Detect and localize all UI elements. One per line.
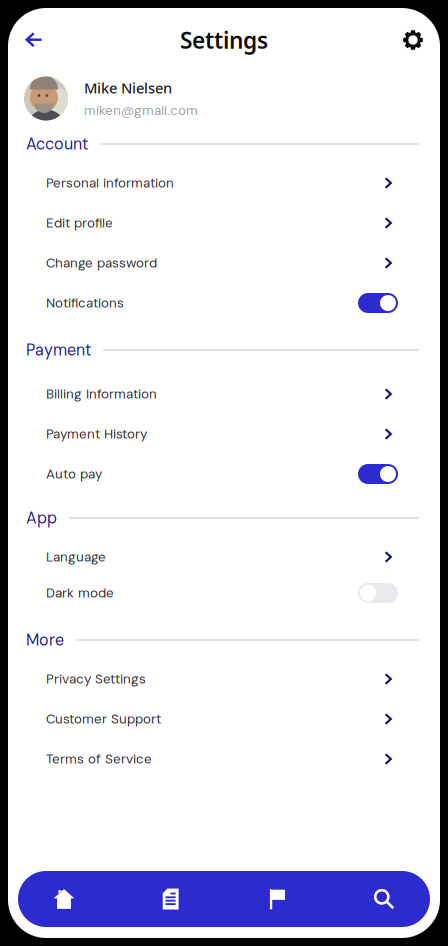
button[interactable]: Personal information (8, 163, 440, 203)
button[interactable]: Dark mode (8, 573, 440, 613)
staticText: Payment (26, 340, 91, 360)
button[interactable]: Documents (143, 871, 199, 927)
button[interactable]: Privacy Settings (8, 659, 440, 699)
button[interactable]: Mike Nielsen (8, 72, 440, 125)
button[interactable]: Reports (249, 871, 305, 927)
staticText: Customer Support (46, 710, 161, 728)
button[interactable]: Customer Support (8, 699, 440, 739)
button[interactable]: Search (356, 871, 412, 927)
staticText: Mike Nielsen (84, 78, 172, 98)
staticText: Edit profile (46, 214, 113, 232)
staticText: Privacy Settings (46, 670, 146, 688)
staticText: More (26, 630, 64, 650)
button[interactable]: Settings options (391, 18, 435, 62)
button[interactable]: Language (8, 537, 440, 577)
staticText: Account (26, 134, 88, 154)
button[interactable]: Back (12, 18, 56, 62)
button[interactable]: Notifications (8, 283, 440, 323)
button[interactable]: Auto pay (8, 454, 440, 494)
staticText: Dark mode (46, 584, 114, 602)
button[interactable]: Home (36, 871, 92, 927)
staticText: Settings (180, 25, 268, 55)
staticText: miken@gmail.com (84, 102, 198, 119)
button[interactable]: Terms of Service (8, 739, 440, 779)
staticText: Billing Information (46, 385, 157, 403)
staticText: Language (46, 548, 106, 566)
staticText: Auto pay (46, 465, 102, 483)
staticText: Notifications (46, 294, 124, 312)
staticText: App (26, 508, 57, 528)
staticText: Personal information (46, 174, 174, 192)
staticText: Payment History (46, 425, 147, 443)
button[interactable]: Edit profile (8, 203, 440, 243)
button[interactable]: Change password (8, 243, 440, 283)
button[interactable]: Payment History (8, 414, 440, 454)
button[interactable]: Billing Information (8, 374, 440, 414)
staticText: Terms of Service (46, 750, 152, 768)
staticText: Change password (46, 254, 157, 272)
